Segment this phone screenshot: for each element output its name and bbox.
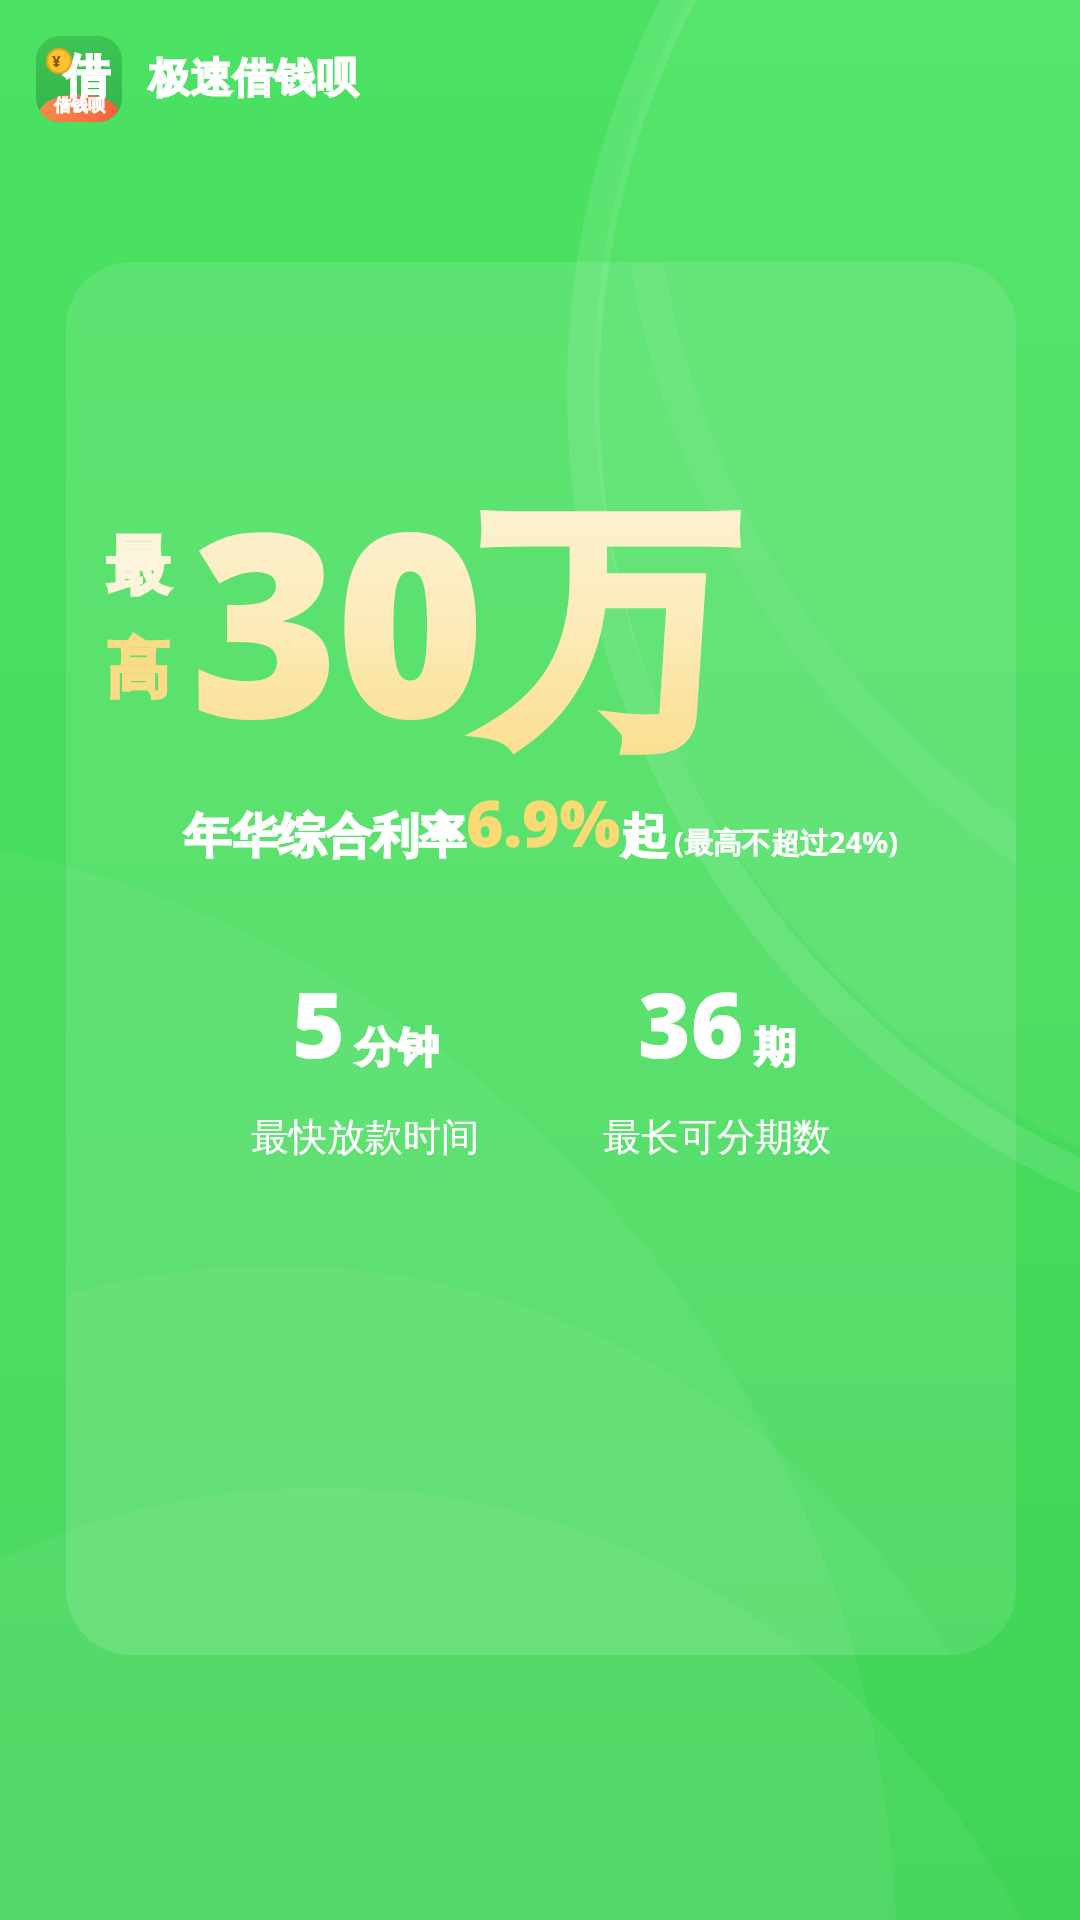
staticText: 期 bbox=[754, 1022, 796, 1075]
staticText: 起 bbox=[621, 807, 668, 866]
staticText: 极速借钱呗 bbox=[148, 53, 358, 105]
staticText: ¥ bbox=[52, 51, 61, 71]
staticText: 36 bbox=[638, 962, 744, 1085]
staticText: (最高不超过24%) bbox=[674, 822, 898, 862]
button[interactable]: App logo bbox=[36, 36, 358, 122]
button[interactable]: 最 bbox=[66, 262, 1016, 1655]
staticText: 借钱呗 bbox=[54, 95, 105, 116]
staticText: 30万 bbox=[190, 444, 732, 792]
other: App logo bbox=[36, 36, 122, 122]
staticText: 最 bbox=[106, 526, 170, 607]
staticText: 年华综合利率 bbox=[184, 807, 466, 866]
staticText: 6.9% bbox=[466, 779, 621, 866]
staticText: 高 bbox=[106, 629, 170, 710]
staticText: 借 bbox=[64, 48, 110, 106]
staticText: 5 bbox=[292, 962, 345, 1085]
staticText: 分钟 bbox=[355, 1022, 439, 1075]
staticText: 最长可分期数 bbox=[603, 1113, 831, 1161]
staticText: 最快放款时间 bbox=[251, 1113, 479, 1161]
